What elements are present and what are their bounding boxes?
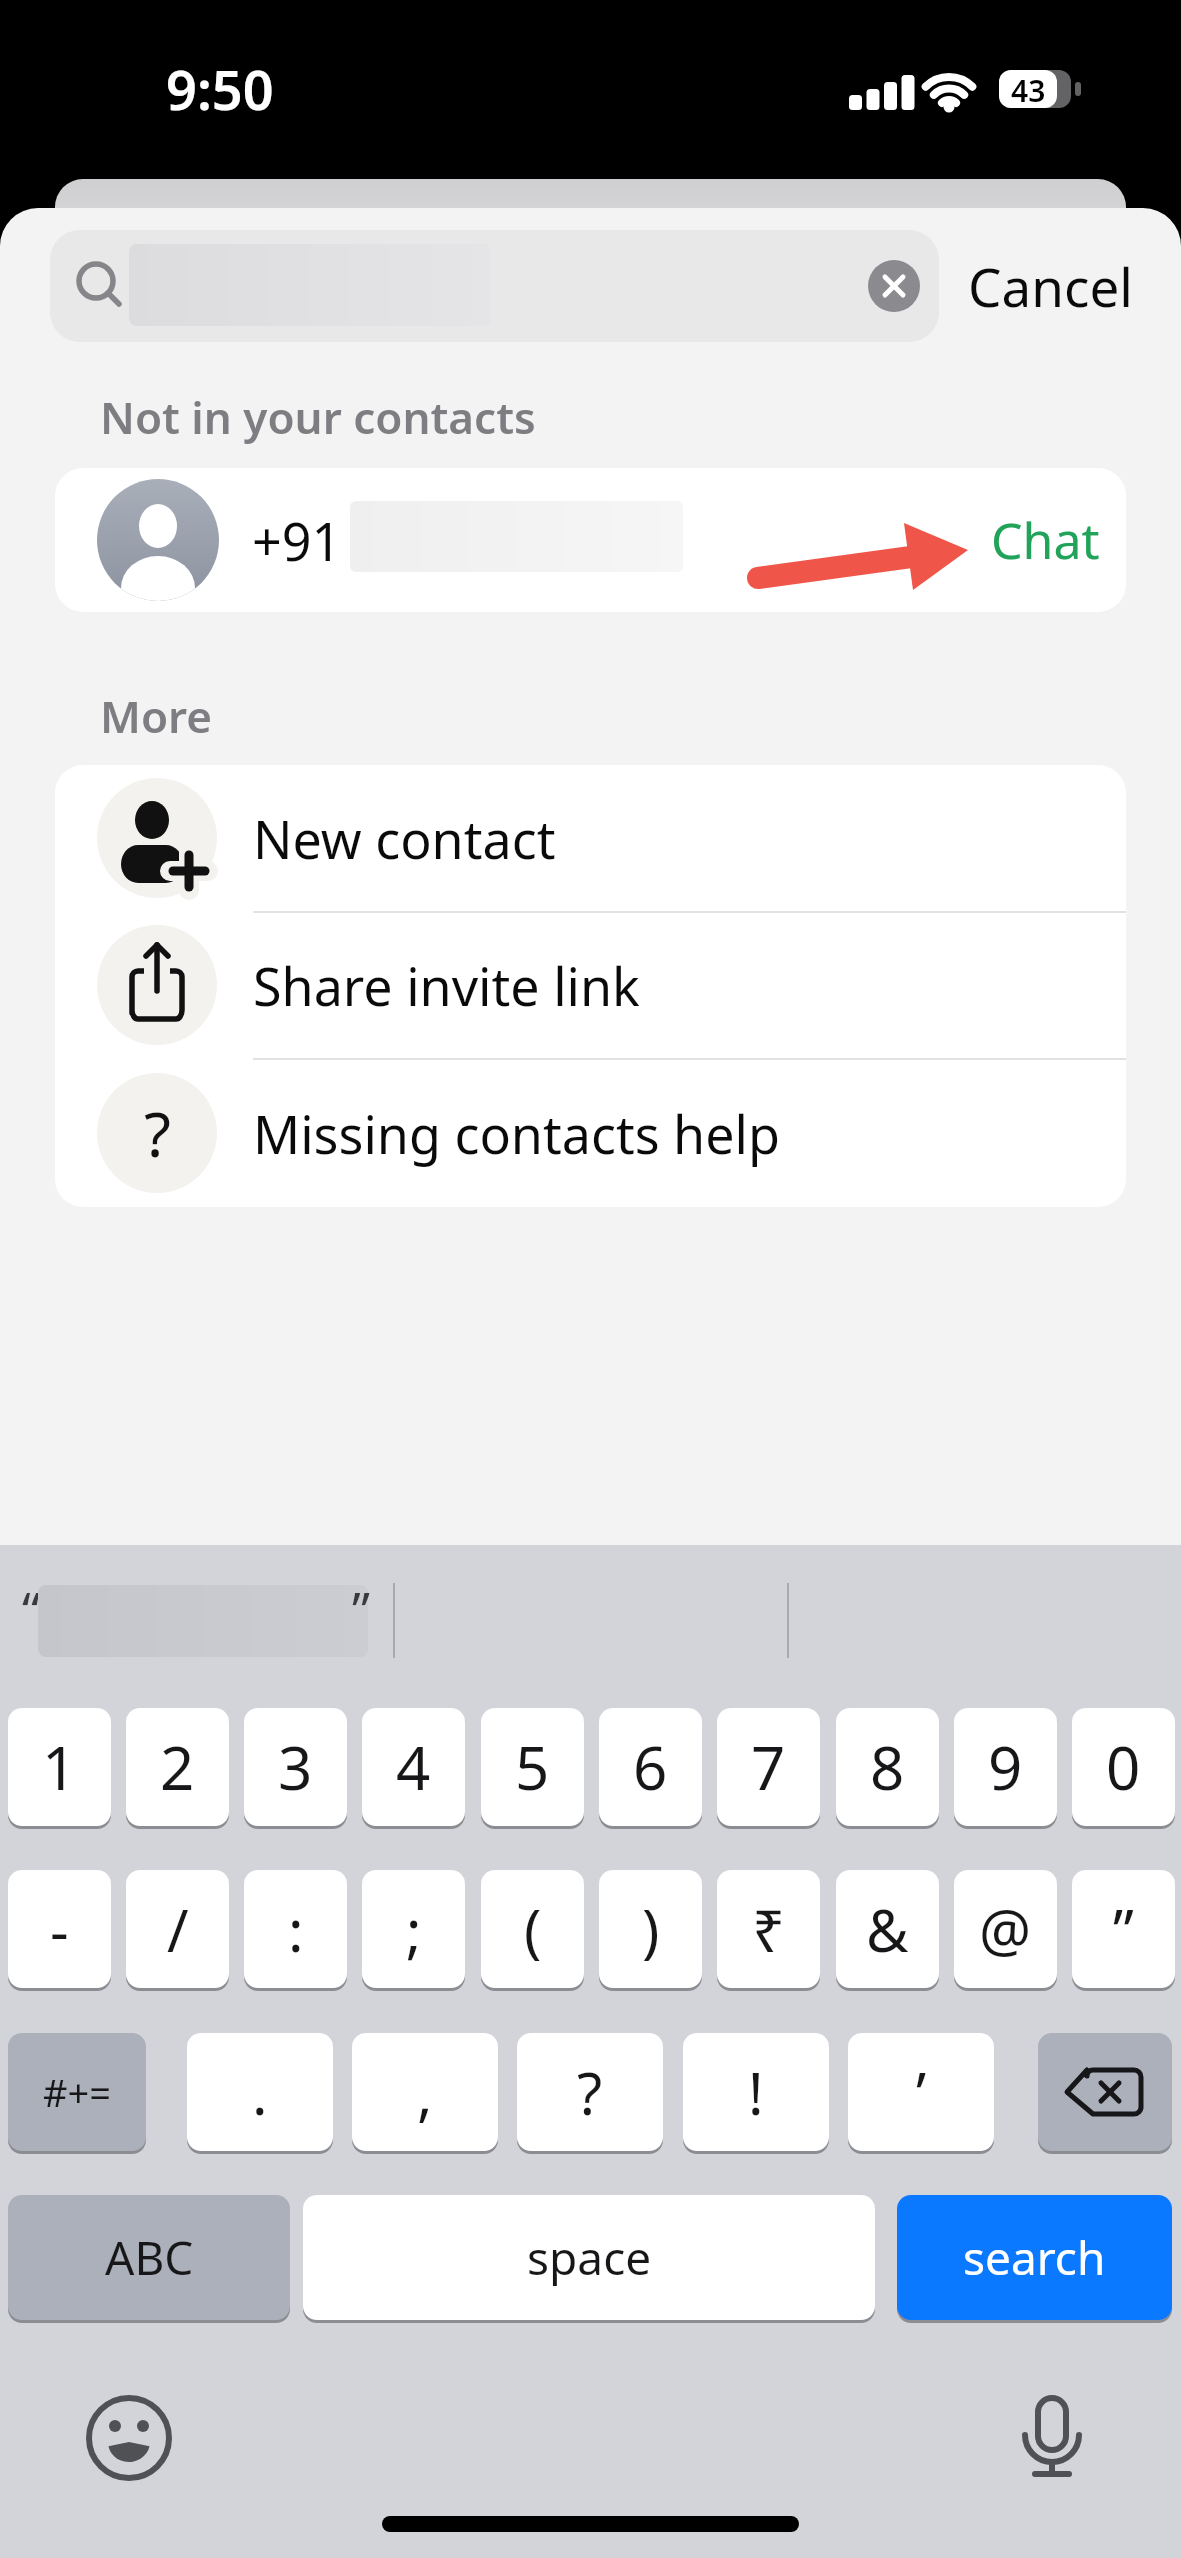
button[interactable]: space (303, 2195, 875, 2320)
button[interactable]: 7 (717, 1708, 820, 1826)
staticText: 9:50 (166, 52, 274, 122)
button[interactable]: ” (1072, 1870, 1175, 1988)
button[interactable]: ₹ (717, 1870, 820, 1988)
button[interactable]: ? (517, 2033, 663, 2151)
button[interactable]: , (352, 2033, 498, 2151)
button[interactable]: search (897, 2195, 1172, 2320)
staticText: ) (642, 1890, 660, 1969)
button[interactable]: ) (599, 1870, 702, 1988)
staticText: 6 (633, 1726, 668, 1808)
staticText: ₹ (752, 1890, 786, 1969)
button[interactable]: 0 (1072, 1708, 1175, 1826)
staticText: 8 (870, 1726, 905, 1808)
staticText: Chat (991, 506, 1100, 574)
staticText: & (866, 1890, 909, 1969)
staticText: 9 (988, 1726, 1023, 1808)
button[interactable]: 5 (481, 1708, 584, 1826)
staticText: space (527, 2226, 652, 2289)
button[interactable]: . (187, 2033, 333, 2151)
staticText: 3 (278, 1726, 313, 1808)
staticText: +91 (252, 505, 342, 576)
staticText: . (252, 2053, 268, 2132)
staticText: - (50, 1890, 69, 1969)
button[interactable]: 1 (8, 1708, 111, 1826)
staticText: 43 (1011, 70, 1046, 108)
staticText: 1 (42, 1726, 77, 1808)
button[interactable]: ’ (848, 2033, 994, 2151)
button[interactable]: / (126, 1870, 229, 1988)
button[interactable]: #+= (8, 2033, 146, 2151)
staticText: / (167, 1890, 189, 1969)
staticText: More (100, 686, 212, 744)
staticText: Not in your contacts (100, 387, 536, 447)
button[interactable]: 6 (599, 1708, 702, 1826)
button[interactable]: ? (55, 1059, 1126, 1207)
staticText: ; (406, 1890, 422, 1969)
staticText: : (288, 1890, 304, 1969)
button[interactable]: Chat (980, 468, 1110, 612)
button[interactable]: @ (954, 1870, 1057, 1988)
button[interactable]: Share invite link (55, 912, 1126, 1059)
button[interactable]: 2 (126, 1708, 229, 1826)
staticText: 2 (160, 1726, 195, 1808)
staticText: ” (352, 1575, 370, 1643)
staticText: ? (144, 1091, 171, 1175)
staticText: “ (22, 1575, 40, 1643)
button[interactable]: ABC (8, 2195, 290, 2320)
staticText: ’ (916, 2053, 927, 2132)
button[interactable] (868, 260, 920, 312)
staticText: Share invite link (253, 950, 640, 1021)
staticText: New contact (253, 803, 556, 874)
staticText: Missing contacts help (253, 1098, 780, 1169)
staticText: 7 (751, 1726, 786, 1808)
button[interactable]: 8 (836, 1708, 939, 1826)
staticText: #+= (43, 2066, 112, 2118)
button[interactable]: 4 (362, 1708, 465, 1826)
button[interactable] (1007, 2390, 1097, 2480)
button[interactable]: 3 (244, 1708, 347, 1826)
button[interactable] (1038, 2033, 1172, 2151)
staticText: 4 (396, 1726, 431, 1808)
staticText: ” (1113, 1890, 1134, 1969)
staticText: @ (979, 1890, 1032, 1969)
staticText: , (417, 2053, 433, 2132)
staticText: 0 (1106, 1726, 1141, 1808)
staticText: 5 (515, 1726, 550, 1808)
staticText: search (963, 2226, 1106, 2289)
button[interactable] (50, 230, 939, 342)
button[interactable]: ! (683, 2033, 829, 2151)
button[interactable]: & (836, 1870, 939, 1988)
button[interactable]: +91 (55, 468, 1126, 612)
button[interactable]: : (244, 1870, 347, 1988)
staticText: ! (748, 2053, 764, 2132)
button[interactable] (84, 2393, 174, 2483)
button[interactable]: ( (481, 1870, 584, 1988)
staticText: ? (577, 2053, 603, 2132)
staticText: Cancel (968, 250, 1133, 322)
button[interactable]: Cancel (955, 230, 1145, 342)
button[interactable]: New contact (55, 765, 1126, 912)
staticText: ( (524, 1890, 542, 1969)
staticText: ABC (105, 2226, 194, 2289)
button[interactable]: ; (362, 1870, 465, 1988)
button[interactable]: 9 (954, 1708, 1057, 1826)
button[interactable]: - (8, 1870, 111, 1988)
